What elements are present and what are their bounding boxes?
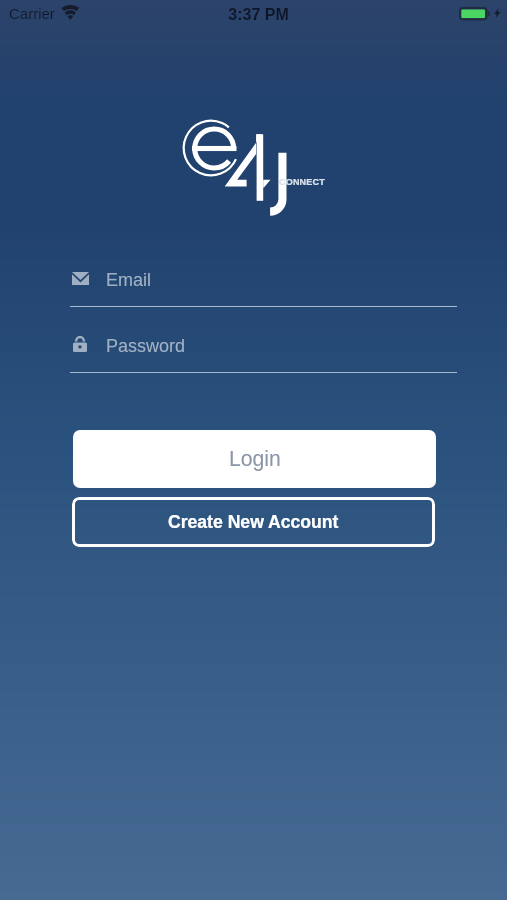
staticText: Carrier [9,5,55,22]
button[interactable]: Password [70,328,457,374]
button[interactable]: Email [70,262,457,308]
staticText: Login [229,447,281,471]
button[interactable]: Create New Account [72,497,435,547]
button[interactable]: Login [73,430,436,488]
staticText: 3:37 PM [5,6,507,24]
staticText: Create New Account [168,512,339,532]
staticText: CONNECT [279,177,325,187]
staticText: Password [106,336,186,356]
staticText: Email [106,270,152,290]
